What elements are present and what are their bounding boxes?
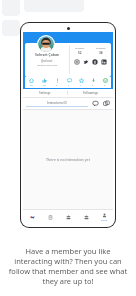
staticText: Followings bbox=[83, 91, 98, 95]
button[interactable]: Comments bbox=[63, 77, 75, 88]
staticText: Profile bbox=[101, 219, 108, 222]
button[interactable]: Members bbox=[77, 210, 95, 225]
button[interactable]: following bbox=[90, 47, 111, 55]
staticText: following bbox=[96, 47, 106, 50]
staticText: 1 bbox=[80, 84, 82, 87]
button[interactable]: Facebook bbox=[92, 59, 98, 65]
staticText: 34 bbox=[99, 51, 103, 55]
staticText: 7 bbox=[68, 84, 70, 87]
staticText: 52 bbox=[78, 51, 82, 55]
button[interactable]: Messages bbox=[92, 100, 99, 107]
staticText: @sohrset bbox=[41, 59, 53, 63]
button[interactable]: Profile bbox=[95, 210, 113, 225]
button[interactable]: followers bbox=[70, 47, 90, 55]
button[interactable]: LinkedIn bbox=[101, 59, 107, 65]
staticText: Interactions (0) bbox=[47, 101, 67, 105]
button[interactable]: Groups bbox=[59, 210, 77, 225]
button[interactable]: Likes bbox=[38, 77, 51, 88]
staticText: Have a member you like interacting with?… bbox=[6, 246, 130, 286]
button[interactable]: Twitter bbox=[83, 59, 89, 65]
staticText: 5 bbox=[104, 84, 106, 87]
button[interactable]: Followings bbox=[68, 89, 113, 97]
button[interactable]: Status bbox=[99, 77, 111, 88]
button[interactable]: Home bbox=[23, 210, 41, 225]
button[interactable]: Share bbox=[103, 100, 110, 107]
staticText: 3 bbox=[56, 84, 58, 87]
button[interactable]: Trophy bbox=[75, 77, 87, 88]
button[interactable]: Info bbox=[51, 77, 63, 88]
staticText: 9 bbox=[92, 84, 94, 87]
staticText: Sohrset Çoban bbox=[35, 52, 60, 57]
staticText: member since 2020 bbox=[37, 64, 58, 67]
button[interactable]: Instagram bbox=[74, 59, 80, 65]
staticText: followers bbox=[75, 47, 85, 50]
button[interactable]: Settings bbox=[23, 89, 67, 97]
staticText: Settings bbox=[39, 91, 51, 95]
button[interactable]: Feed bbox=[41, 210, 59, 225]
button[interactable]: Downloads bbox=[87, 77, 99, 88]
staticText: 18 bbox=[43, 84, 46, 87]
button[interactable]: Interactions (0) bbox=[26, 101, 88, 107]
button[interactable]: Home bbox=[25, 77, 38, 88]
staticText: 24 bbox=[30, 84, 33, 87]
staticText: There is no interaction yet bbox=[46, 157, 90, 162]
